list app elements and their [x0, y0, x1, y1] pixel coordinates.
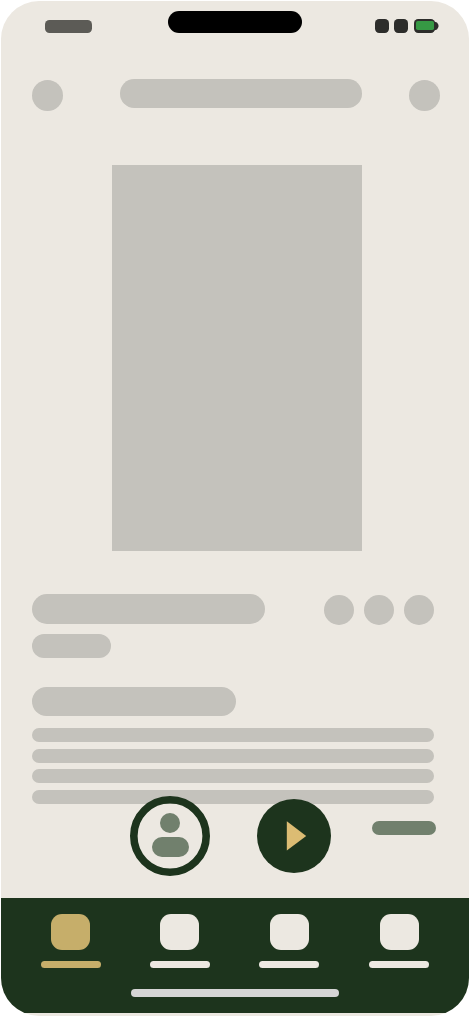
button[interactable]: Tab 4: [344, 914, 454, 968]
button[interactable]: Profile: [409, 80, 440, 111]
button[interactable]: Play: [257, 799, 331, 873]
button[interactable]: Tab 2: [125, 914, 234, 968]
button[interactable]: Tab 1: [16, 914, 125, 968]
button[interactable]: Navigation menu: [32, 80, 63, 111]
button[interactable]: Share: [364, 595, 394, 625]
button[interactable]: Account: [130, 796, 210, 876]
button[interactable]: Like: [324, 595, 354, 625]
button[interactable]: More options: [404, 595, 434, 625]
button[interactable]: Tab 3: [234, 914, 344, 968]
